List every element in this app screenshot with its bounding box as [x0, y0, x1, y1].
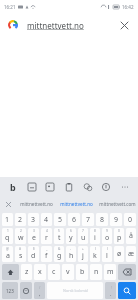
staticText: Norsk bokmål [63, 288, 88, 293]
button[interactable]: 8 [96, 213, 108, 226]
button[interactable]: Shift [2, 264, 19, 280]
staticText: 4 [46, 229, 48, 233]
button[interactable]: z [21, 264, 32, 280]
button[interactable]: æ [126, 246, 136, 262]
staticText: h [69, 251, 74, 261]
staticText: 16:42 [122, 4, 134, 10]
button[interactable]: n [90, 264, 102, 280]
staticText: - [70, 247, 72, 251]
button[interactable]: 1 [2, 213, 13, 226]
button[interactable]: More options [117, 179, 133, 195]
button[interactable]: + [78, 246, 88, 262]
button[interactable]: m [104, 264, 116, 280]
button[interactable]: c [48, 264, 60, 280]
button[interactable]: 2 [15, 228, 26, 244]
button[interactable]: # [15, 246, 26, 262]
button[interactable]: GIF [42, 179, 58, 195]
staticText: å [129, 231, 133, 241]
staticText: m [107, 267, 114, 277]
staticText: e [32, 233, 36, 243]
button[interactable]: Space [47, 282, 103, 299]
button[interactable]: ! [105, 282, 116, 299]
button[interactable]: / [34, 282, 45, 299]
button[interactable]: x [34, 264, 46, 280]
staticText: b [10, 181, 16, 193]
button[interactable]: Gboard [5, 179, 21, 195]
staticText: & [58, 247, 61, 251]
button[interactable]: mittnettvett.no [16, 197, 56, 211]
button[interactable]: 0 [114, 228, 124, 244]
staticText: $ [33, 247, 35, 251]
button[interactable]: b [76, 264, 88, 280]
button[interactable]: Clear text [116, 17, 132, 33]
button[interactable]: å [126, 228, 136, 244]
button[interactable]: Expand suggestions [0, 197, 16, 211]
button[interactable]: 7 [82, 213, 94, 226]
staticText: s [19, 251, 23, 261]
button[interactable]: Search [118, 282, 136, 299]
staticText: t [58, 233, 61, 243]
button[interactable]: 8 [90, 228, 100, 244]
staticText: w [18, 233, 24, 243]
staticText: p [117, 233, 122, 243]
staticText: . [110, 290, 112, 297]
button[interactable]: 7 [78, 228, 88, 244]
staticText: b [80, 267, 85, 277]
button[interactable]: Translate [80, 179, 96, 195]
button[interactable]: 123 [2, 282, 18, 299]
button[interactable]: Stickers [24, 179, 40, 195]
staticText: u [81, 233, 86, 243]
staticText: # [19, 247, 22, 251]
staticText: 5 [58, 229, 60, 233]
staticText: 123 [6, 288, 14, 294]
button[interactable]: 0 [124, 213, 136, 226]
button[interactable]: ø [114, 246, 124, 262]
button[interactable]: 1 [2, 228, 13, 244]
staticText: v [66, 267, 70, 277]
button[interactable]: _ [41, 246, 52, 262]
staticText: 9 [106, 229, 108, 233]
staticText: 6 [70, 229, 72, 233]
staticText: 0 [118, 229, 120, 233]
staticText: 8 [94, 229, 96, 233]
staticText: 1 [5, 215, 10, 225]
staticText: j [82, 251, 84, 261]
staticText: 8 [100, 215, 105, 225]
button[interactable]: @ [2, 246, 13, 262]
staticText: ( [95, 247, 96, 251]
staticText: 3 [31, 215, 36, 225]
button[interactable]: 9 [102, 228, 112, 244]
button[interactable]: 9 [110, 213, 122, 226]
staticText: f [45, 251, 48, 261]
button[interactable]: 5 [54, 228, 64, 244]
button[interactable]: 3 [28, 228, 39, 244]
button[interactable]: & [54, 246, 64, 262]
staticText: 6 [72, 215, 77, 225]
button[interactable]: mittnettvett.no [27, 20, 116, 31]
button[interactable]: v [62, 264, 74, 280]
button[interactable]: ) [102, 246, 112, 262]
staticText: mittnettvett.no [60, 201, 93, 207]
button[interactable]: Backspace [118, 264, 136, 280]
button[interactable]: 5 [54, 213, 66, 226]
button[interactable]: 4 [41, 213, 52, 226]
button[interactable]: mittnettvett.no [56, 197, 97, 211]
button[interactable]: 2 [15, 213, 26, 226]
button[interactable]: Search engine Google [6, 18, 20, 32]
button[interactable]: Settings [98, 179, 114, 195]
staticText: mittnettvett.no [20, 201, 53, 207]
staticText: mittnettvett.com [99, 201, 136, 207]
button[interactable]: ( [90, 246, 100, 262]
staticText: / [39, 285, 41, 290]
staticText: 1 [7, 229, 9, 233]
button[interactable]: 3 [28, 213, 39, 226]
button[interactable]: 6 [66, 228, 76, 244]
button[interactable]: mittnettvett.com [97, 197, 138, 211]
button[interactable]: 6 [68, 213, 80, 226]
button[interactable]: - [66, 246, 76, 262]
button[interactable]: 4 [41, 228, 52, 244]
button[interactable]: $ [28, 246, 39, 262]
staticText: x [38, 267, 42, 277]
button[interactable]: Clipboard [61, 179, 77, 195]
button[interactable]: Emoji [20, 282, 32, 299]
